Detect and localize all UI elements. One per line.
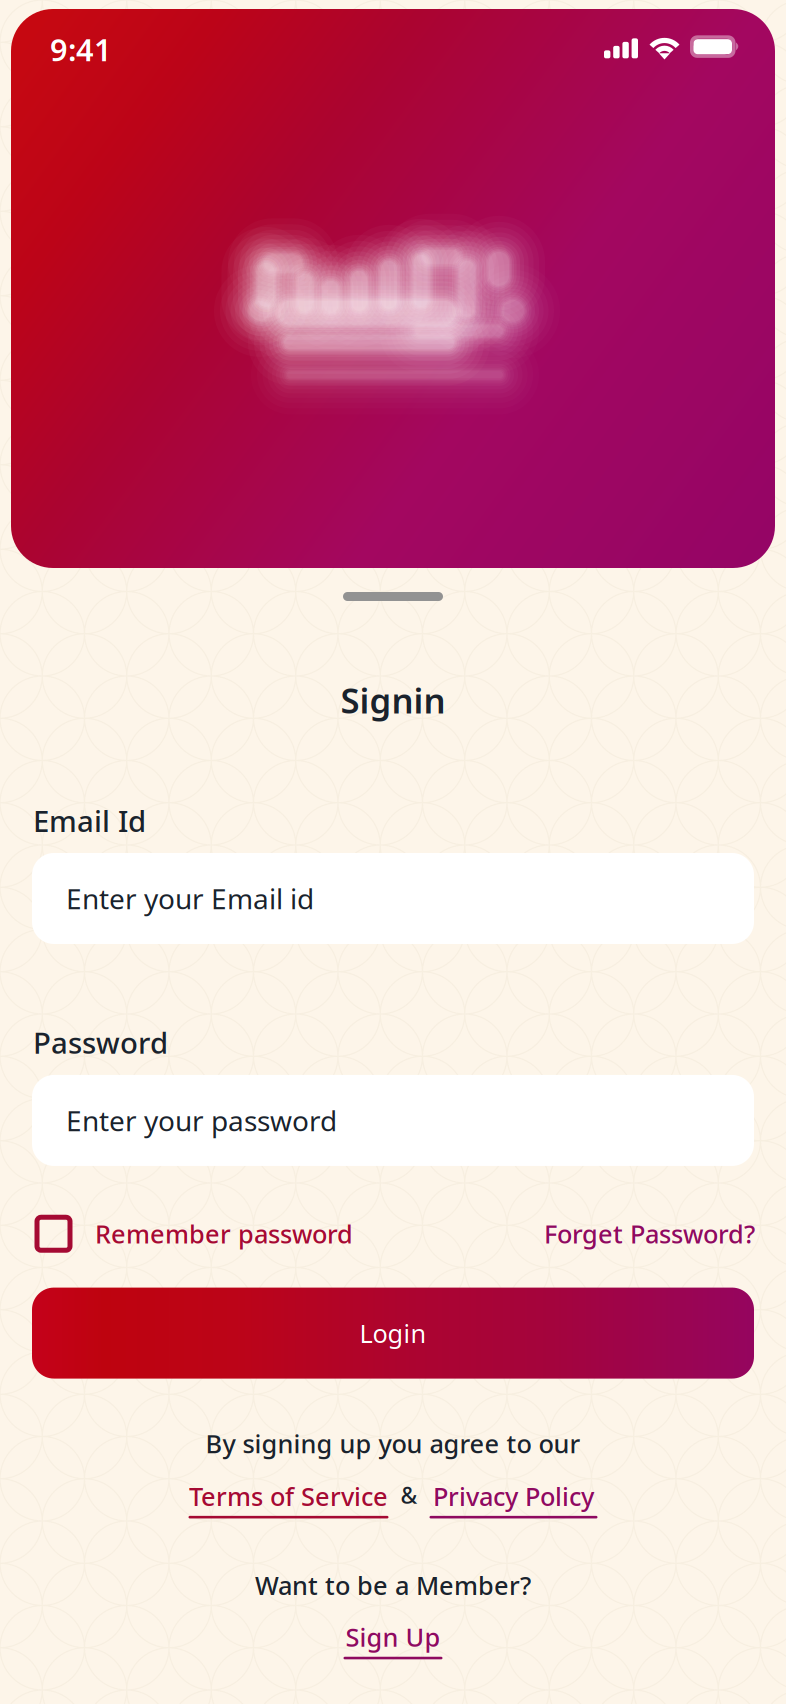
staticText: Email Id	[33, 801, 146, 840]
staticText: Signin	[340, 677, 445, 723]
staticText: 9:41	[50, 29, 112, 70]
staticText: Privacy Policy	[433, 1479, 594, 1513]
staticText: Enter your password	[66, 1102, 337, 1139]
button[interactable]: Login	[32, 1288, 754, 1379]
staticText: Remember password	[95, 1217, 353, 1250]
staticText: Want to be a Member?	[255, 1568, 531, 1602]
button[interactable]: Forget Password?	[544, 1217, 755, 1250]
button[interactable]: Privacy Policy	[429, 1479, 597, 1518]
staticText: Password	[33, 1023, 168, 1062]
staticText: Enter your Email id	[66, 880, 314, 917]
button[interactable]: Terms of Service	[188, 1479, 388, 1518]
staticText: By signing up you agree to our	[205, 1427, 580, 1460]
staticText: Sign Up	[345, 1620, 440, 1654]
staticText: Forget Password?	[544, 1217, 755, 1250]
button[interactable]: Enter your password	[32, 1075, 754, 1166]
button[interactable]: Remember password	[37, 1217, 353, 1250]
button[interactable]: Enter your Email id	[32, 853, 754, 944]
staticText: &	[400, 1480, 417, 1510]
staticText: Login	[359, 1316, 426, 1350]
staticText: Terms of Service	[189, 1479, 388, 1513]
button[interactable]: Sign Up	[343, 1620, 442, 1659]
